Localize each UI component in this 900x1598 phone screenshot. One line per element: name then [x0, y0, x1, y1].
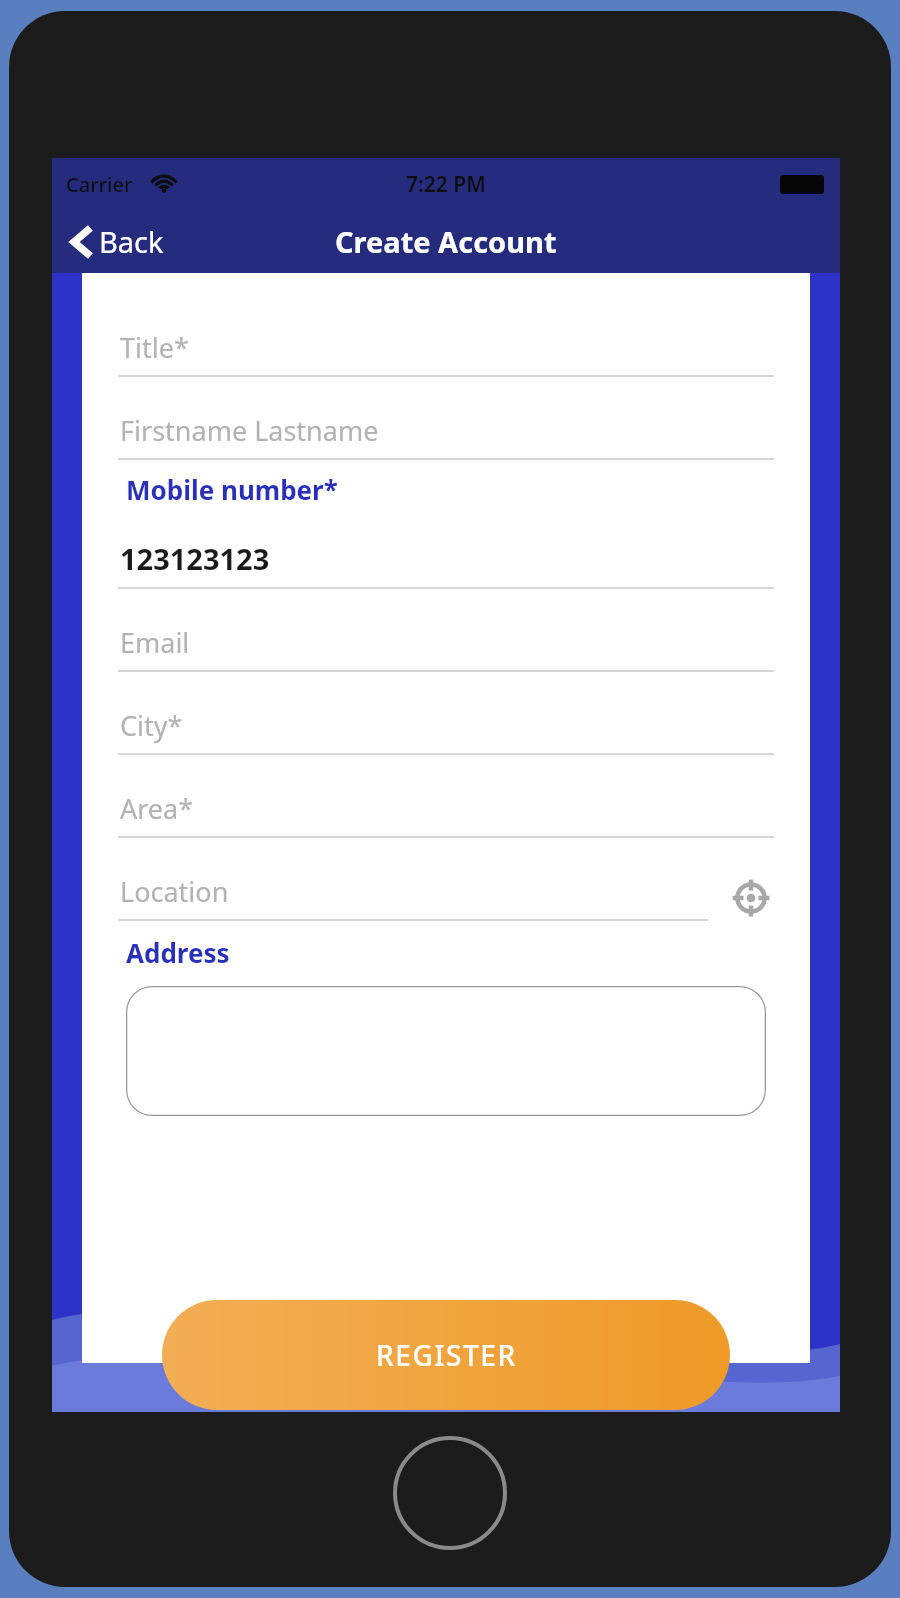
- button[interactable]: Mobile number*: [118, 472, 774, 589]
- staticText: Location: [120, 873, 229, 910]
- staticText: Carrier: [66, 171, 133, 198]
- staticText: Address: [126, 935, 230, 970]
- staticText: Area*: [120, 790, 194, 827]
- staticText: Firstname Lastname: [120, 412, 379, 449]
- button[interactable]: City*: [118, 707, 774, 755]
- staticText: Email: [120, 624, 190, 661]
- button[interactable]: Back: [52, 216, 176, 267]
- staticText: 7:22 PM: [406, 170, 486, 199]
- staticText: Create Account: [335, 222, 557, 261]
- staticText: Title*: [120, 329, 189, 366]
- button[interactable]: Title*: [118, 329, 774, 377]
- button[interactable]: [126, 986, 766, 1116]
- staticText: 123123123: [120, 539, 270, 578]
- staticText: Mobile number*: [126, 472, 338, 507]
- button[interactable]: Email: [118, 624, 774, 672]
- staticText: REGISTER: [376, 1336, 517, 1374]
- button[interactable]: Firstname Lastname: [118, 412, 774, 460]
- button[interactable]: Location: [118, 873, 708, 921]
- button[interactable]: REGISTER: [162, 1300, 730, 1410]
- staticText: Back: [99, 222, 164, 261]
- button[interactable]: Area*: [118, 790, 774, 838]
- staticText: City*: [120, 707, 183, 744]
- button[interactable]: Use current location: [728, 875, 774, 921]
